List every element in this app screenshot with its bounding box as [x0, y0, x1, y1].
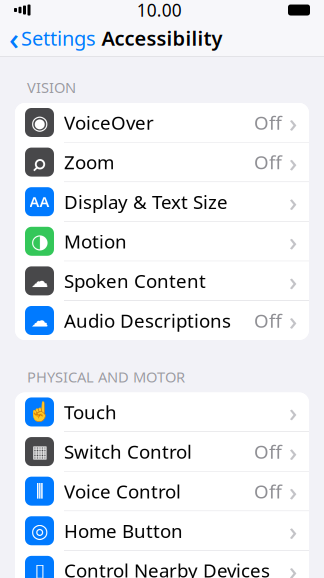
staticText: AA — [29, 192, 49, 211]
staticText: ▯ — [34, 560, 44, 578]
staticText: › — [289, 185, 297, 218]
staticText: Off — [254, 479, 282, 504]
staticText: Voice Control — [64, 479, 181, 504]
staticText: ⦀ — [35, 482, 43, 500]
staticText: › — [289, 474, 297, 508]
button[interactable]: ◑ — [15, 222, 309, 261]
staticText: ☁ — [31, 271, 48, 291]
staticText: ▦ — [31, 442, 47, 461]
button[interactable]: ◎ — [15, 511, 309, 550]
staticText: Zoom — [64, 150, 114, 174]
staticText: VISION — [27, 77, 76, 97]
button[interactable]: AA — [15, 182, 309, 221]
staticText: › — [289, 395, 297, 429]
button[interactable]: ⦀ — [15, 472, 309, 511]
staticText: Home Button — [64, 518, 183, 543]
staticText: Switch Control — [64, 439, 192, 464]
button[interactable]: ⌕ — [15, 143, 309, 182]
staticText: Spoken Content — [64, 268, 206, 293]
staticText: ⌕ — [32, 141, 46, 183]
button[interactable]: ☁ — [15, 261, 309, 300]
staticText: ☝ — [28, 401, 51, 423]
staticText: › — [289, 106, 297, 139]
staticText: Settings — [21, 25, 96, 51]
button[interactable]: ▦ — [15, 432, 309, 471]
staticText: Motion — [64, 229, 127, 254]
staticText: Off — [254, 150, 282, 174]
staticText: ◑ — [31, 230, 48, 253]
staticText: 10.00 — [137, 0, 182, 21]
staticText: Accessibility — [101, 25, 222, 51]
button[interactable]: ☝ — [15, 392, 309, 431]
staticText: › — [289, 224, 297, 258]
button[interactable]: ‹ — [0, 14, 96, 62]
staticText: Touch — [64, 400, 117, 424]
staticText: Off — [254, 439, 282, 464]
staticText: VoiceOver — [64, 110, 154, 135]
staticText: › — [289, 264, 297, 298]
staticText: ‹ — [9, 18, 19, 58]
staticText: Off — [254, 308, 282, 333]
staticText: › — [289, 435, 297, 468]
staticText: ◉ — [31, 111, 48, 134]
staticText: › — [289, 553, 297, 578]
staticText: Audio Descriptions — [64, 308, 231, 333]
staticText: › — [289, 145, 297, 179]
button[interactable]: ☁ — [15, 301, 309, 340]
staticText: › — [289, 304, 297, 337]
staticText: ◎ — [31, 519, 48, 542]
staticText: Control Nearby Devices — [64, 558, 270, 578]
staticText: › — [289, 514, 297, 547]
staticText: PHYSICAL AND MOTOR — [27, 367, 185, 386]
button[interactable]: ◉ — [15, 103, 309, 142]
staticText: Off — [254, 110, 282, 135]
button[interactable]: ▯ — [15, 551, 309, 578]
staticText: ☁ — [31, 311, 48, 330]
staticText: Display & Text Size — [64, 189, 228, 214]
